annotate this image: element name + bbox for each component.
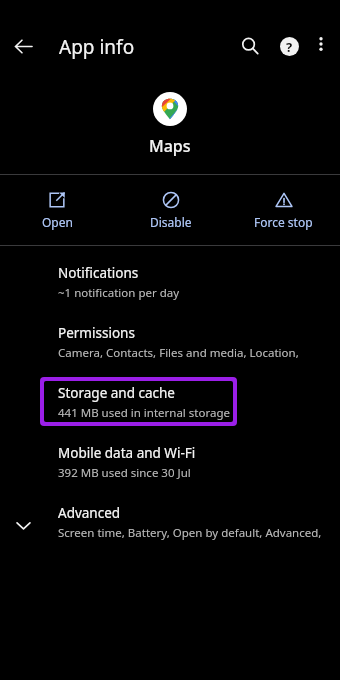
staticText: Camera, Contacts, Files and media, Locat… (58, 345, 324, 361)
button[interactable]: Advanced (0, 495, 340, 555)
button[interactable]: Help (271, 28, 307, 64)
staticText: Storage and cache (58, 384, 175, 402)
staticText: Screen time, Battery, Open by default, A… (58, 525, 330, 541)
staticText: ? (286, 38, 293, 56)
staticText: Open (42, 214, 73, 230)
staticText: Advanced (58, 504, 121, 522)
button[interactable]: More options (305, 28, 337, 60)
staticText: Notifications (58, 264, 139, 282)
staticText: App info (59, 34, 135, 60)
staticText: Disable (150, 214, 192, 230)
staticText: 392 MB used since 30 Jul (58, 465, 191, 481)
button[interactable]: Permissions (0, 315, 340, 375)
button[interactable]: Back (5, 28, 41, 64)
button[interactable]: Open (0, 175, 114, 245)
staticText: ~1 notification per day (58, 285, 180, 301)
staticText: Mobile data and Wi-Fi (58, 444, 196, 462)
button[interactable]: Search (232, 28, 268, 64)
staticText: Force stop (254, 214, 313, 230)
button[interactable]: Mobile data and Wi-Fi (0, 435, 340, 495)
staticText: 441 MB used in internal storage (58, 405, 230, 421)
button[interactable]: Force stop (227, 175, 340, 245)
staticText: Maps (149, 135, 191, 157)
button[interactable]: Disable (114, 175, 227, 245)
button[interactable]: Storage and cache (0, 375, 340, 435)
staticText: Permissions (58, 324, 135, 342)
button[interactable]: Notifications (0, 255, 340, 315)
